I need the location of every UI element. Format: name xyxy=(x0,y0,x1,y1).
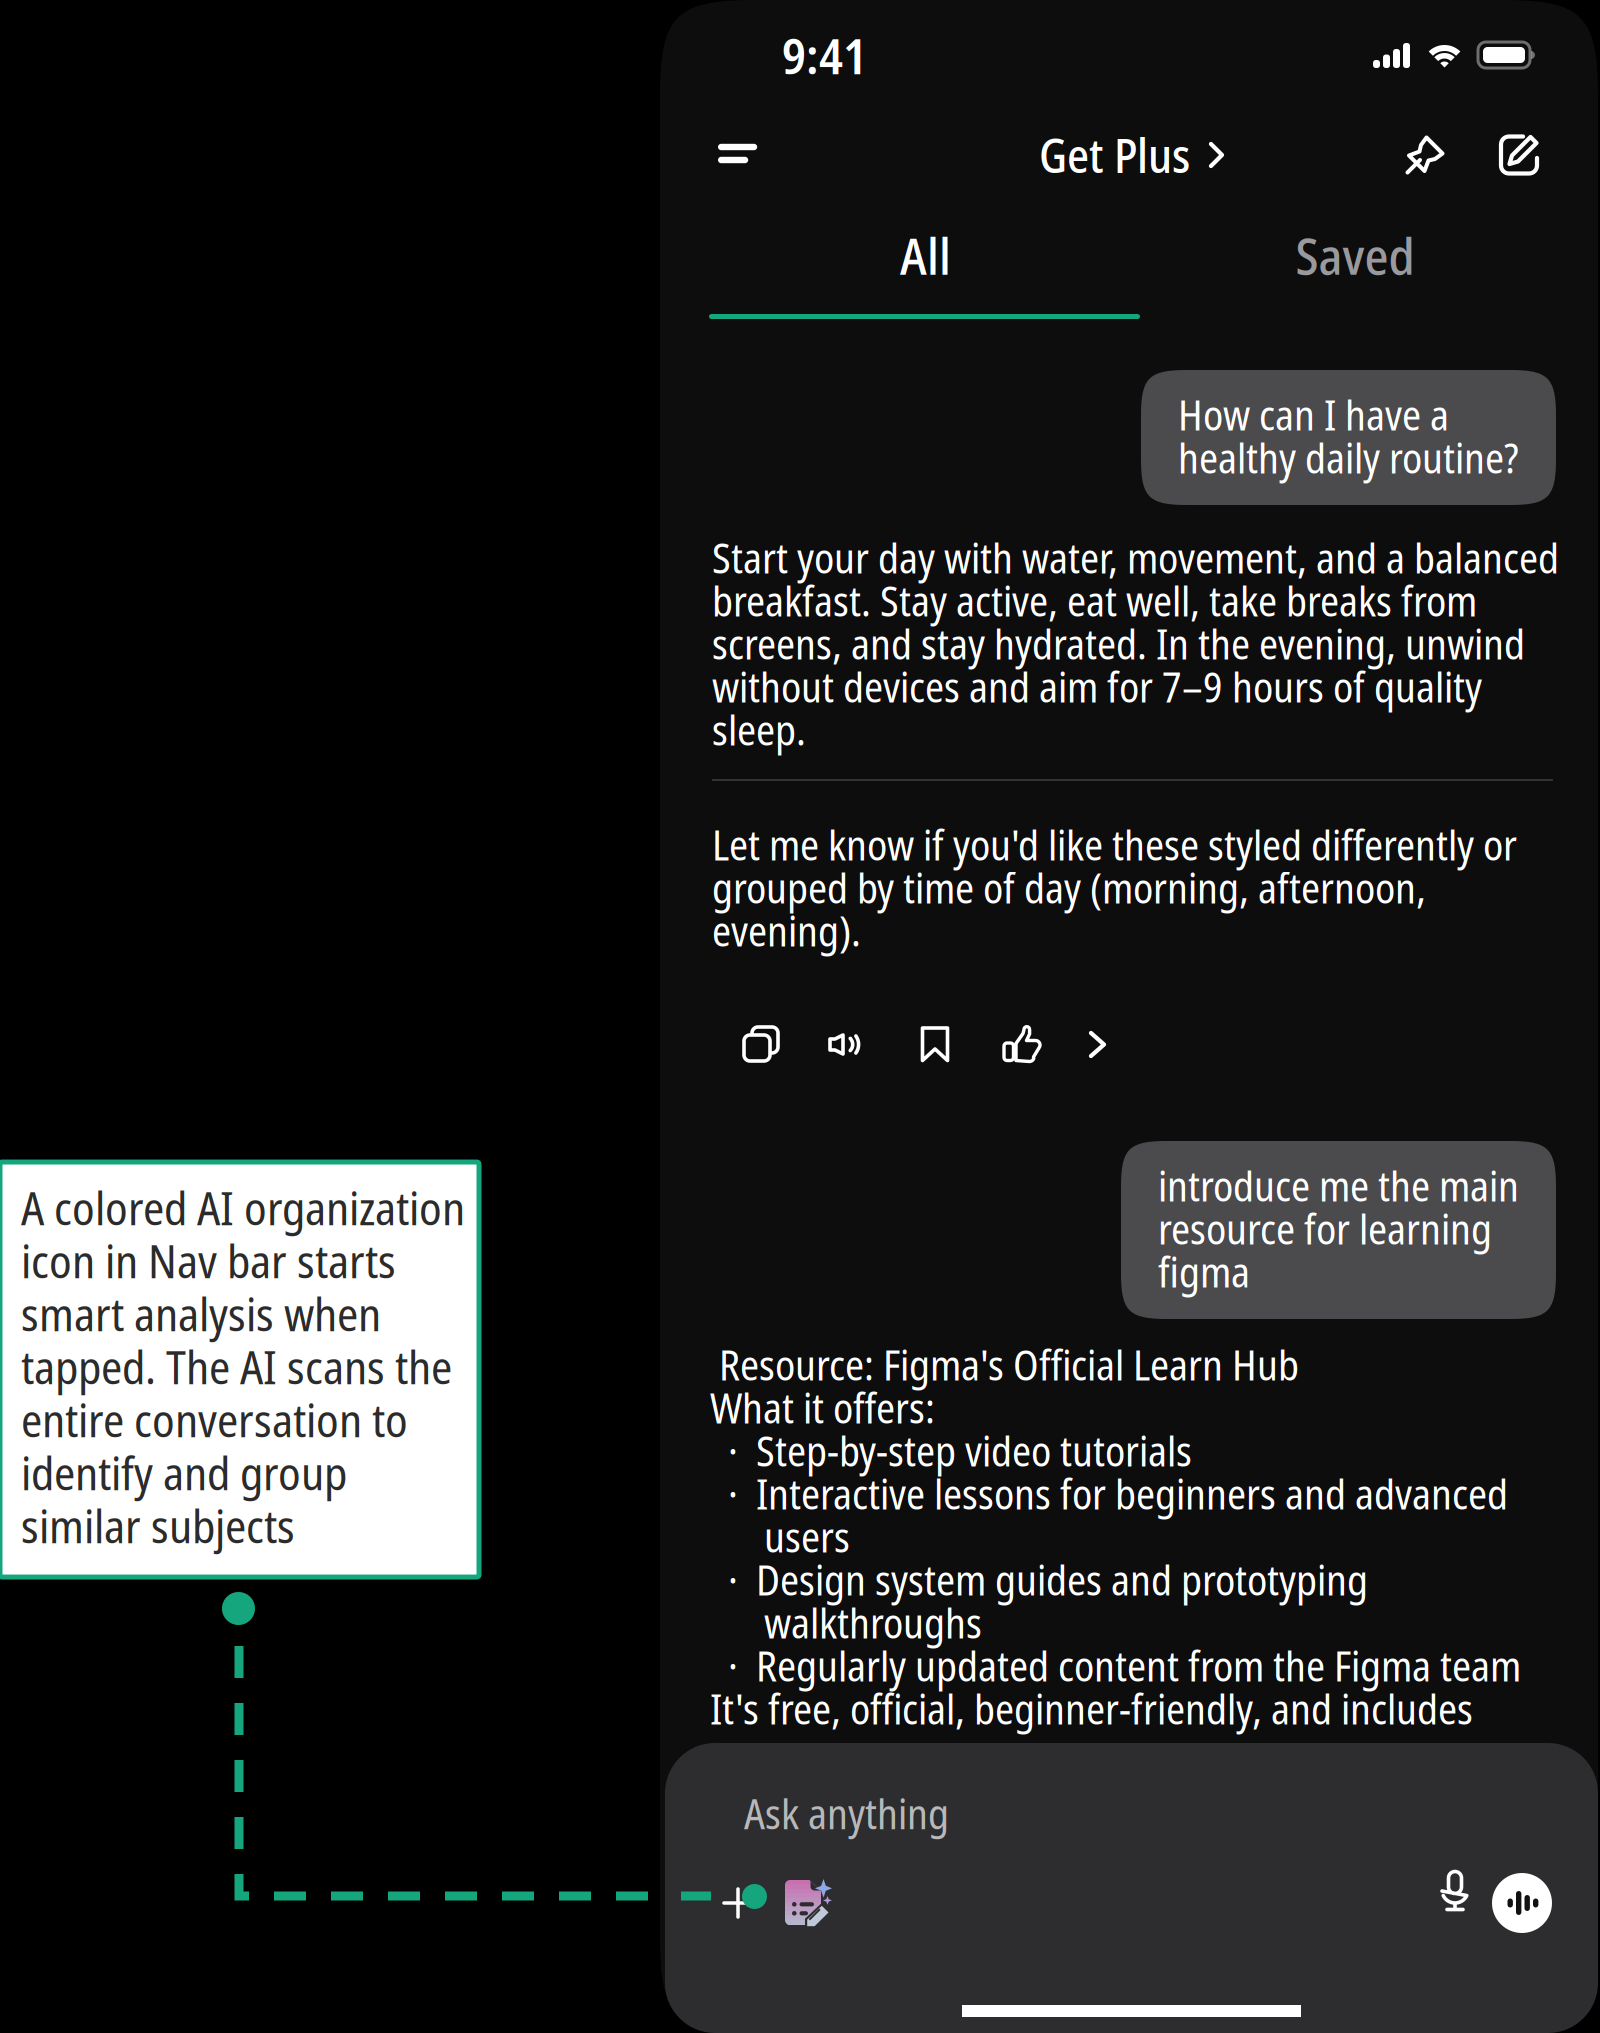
button[interactable]: Read aloud xyxy=(826,1022,870,1066)
staticText: · Regularly updated content from the Fig… xyxy=(710,1637,1521,1694)
staticText: evening). xyxy=(712,902,861,959)
staticText: · Interactive lessons for beginners and … xyxy=(710,1465,1508,1522)
staticText: A colored AI organization xyxy=(21,1176,465,1239)
staticText: tapped. The AI scans the xyxy=(21,1335,452,1398)
staticText: Start your day with water, movement, and… xyxy=(712,529,1559,586)
button[interactable]: Dictate xyxy=(1426,1858,1484,1924)
staticText: healthy daily routine? xyxy=(1178,429,1519,486)
staticText: resource for learning xyxy=(1158,1200,1492,1257)
staticText: Saved xyxy=(1295,220,1414,289)
staticText: 9:41 xyxy=(782,21,867,89)
staticText: · Step-by-step video tutorials xyxy=(710,1422,1192,1479)
button[interactable]: Sidebar xyxy=(710,128,766,182)
staticText: Ask anything xyxy=(744,1785,949,1841)
staticText: icon in Nav bar starts xyxy=(21,1229,396,1292)
button[interactable]: Get Plus xyxy=(1027,111,1237,199)
staticText: smart analysis when xyxy=(21,1282,381,1345)
staticText: How can I have a xyxy=(1178,386,1449,443)
staticText: similar subjects xyxy=(21,1494,295,1557)
staticText: without devices and aim for 7–9 hours of… xyxy=(712,658,1482,715)
staticText: Get Plus xyxy=(1039,123,1190,187)
staticText: identify and group xyxy=(21,1441,347,1504)
staticText: · Design system guides and prototyping xyxy=(710,1551,1368,1608)
button[interactable]: Saved xyxy=(1191,218,1519,292)
staticText: All xyxy=(900,220,951,289)
staticText: breakfast. Stay active, eat well, take b… xyxy=(712,572,1477,629)
button[interactable]: All xyxy=(660,218,1191,292)
staticText: It's free, official, beginner-friendly, … xyxy=(710,1680,1473,1737)
staticText: sleep. xyxy=(712,701,806,758)
staticText: figma xyxy=(1158,1243,1250,1300)
button[interactable]: Add attachment xyxy=(710,1875,766,1931)
button[interactable]: Voice mode xyxy=(1492,1873,1552,1933)
button[interactable]: Bookmark xyxy=(913,1022,957,1066)
staticText: grouped by time of day (morning, afterno… xyxy=(712,859,1426,916)
staticText: screens, and stay hydrated. In the eveni… xyxy=(712,615,1525,672)
button[interactable]: New chat xyxy=(1484,120,1554,190)
button[interactable]: Copy xyxy=(739,1022,783,1066)
button[interactable]: Smart organize xyxy=(784,1879,832,1927)
button[interactable]: Good response xyxy=(1000,1022,1044,1066)
staticText: walkthroughs xyxy=(710,1594,982,1651)
staticText: What it offers: xyxy=(710,1379,935,1436)
staticText: users xyxy=(710,1508,850,1565)
staticText: Resource: Figma's Official Learn Hub xyxy=(710,1336,1299,1393)
staticText: introduce me the main xyxy=(1158,1157,1519,1214)
button[interactable]: More xyxy=(1087,1022,1111,1066)
staticText: entire conversation to xyxy=(21,1388,408,1451)
button[interactable]: Pin xyxy=(1390,120,1460,190)
staticText: Let me know if you'd like these styled d… xyxy=(712,816,1517,873)
